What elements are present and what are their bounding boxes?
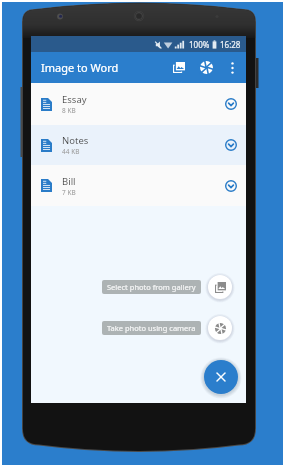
button[interactable]: Take photo using camera	[102, 321, 201, 335]
staticText: Notes	[62, 134, 89, 147]
staticText: 16:28	[220, 39, 241, 50]
button[interactable]: Bill	[31, 165, 246, 206]
staticText: 8 KB	[62, 106, 76, 115]
staticText: Select photo from gallery	[107, 282, 196, 292]
button[interactable]: Essay	[31, 83, 246, 125]
button[interactable]: More options	[223, 52, 241, 83]
staticText: 7 KB	[62, 188, 76, 197]
button[interactable]: Select photo from gallery	[102, 280, 201, 294]
button[interactable]: Expand	[221, 94, 241, 114]
staticText: 44 KB	[62, 147, 80, 156]
button[interactable]: Take photo using camera	[195, 52, 217, 83]
button[interactable]: Select photo from gallery	[208, 275, 232, 299]
staticText: Essay	[62, 93, 87, 106]
staticText: 100%	[189, 39, 210, 50]
button[interactable]: Expand	[221, 135, 241, 155]
button[interactable]: Select photo from gallery	[168, 52, 190, 83]
button[interactable]: Close menu	[204, 360, 238, 394]
staticText: Bill	[62, 175, 76, 188]
staticText: Take photo using camera	[107, 323, 196, 333]
staticText: Image to Word	[41, 60, 119, 75]
button[interactable]: Notes	[31, 125, 246, 165]
button[interactable]: Expand	[221, 176, 241, 196]
button[interactable]: Take photo using camera	[208, 316, 232, 340]
